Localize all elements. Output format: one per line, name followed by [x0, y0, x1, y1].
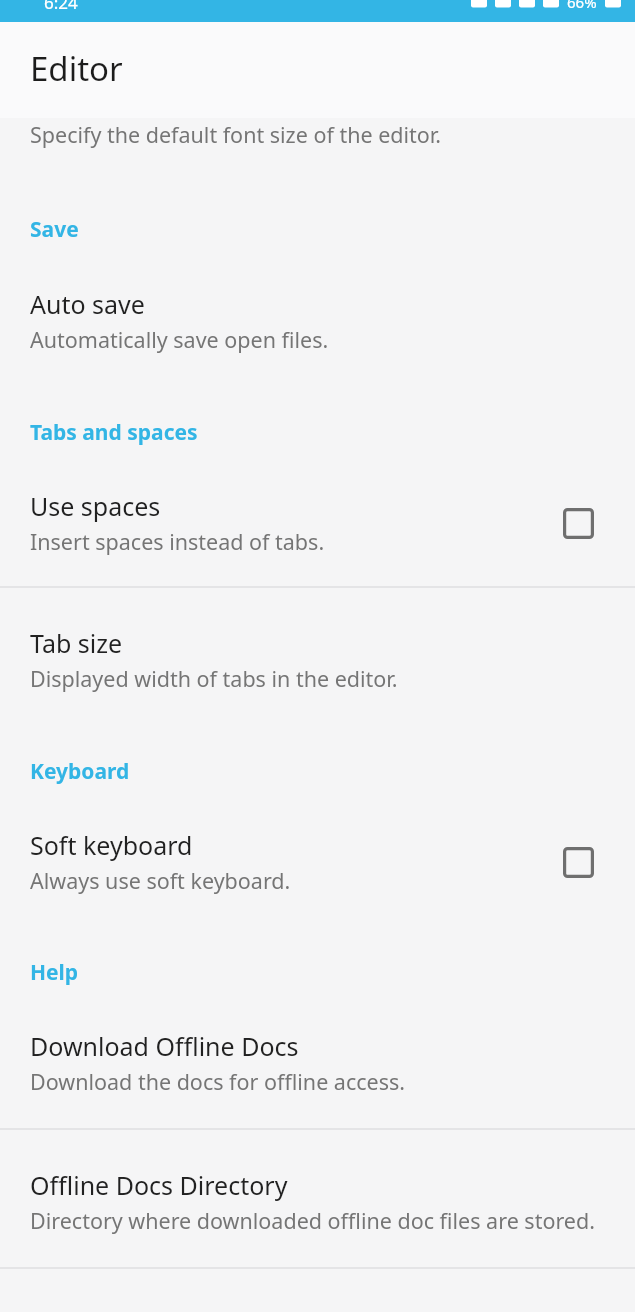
staticText: Displayed width of tabs in the editor. — [30, 664, 398, 693]
staticText: Editor — [30, 46, 123, 91]
button[interactable]: Auto save — [0, 244, 635, 354]
staticText: Directory where downloaded offline doc f… — [30, 1206, 595, 1235]
staticText: 6:24 — [44, 0, 78, 13]
button[interactable]: Tab size — [0, 588, 635, 693]
staticText: Auto save — [30, 287, 145, 321]
staticText: Offline Docs Directory — [30, 1168, 288, 1202]
button[interactable]: Soft keyboard — [549, 833, 607, 891]
button[interactable]: Use spaces — [549, 494, 607, 552]
staticText: 66% — [567, 0, 597, 12]
staticText: Soft keyboard — [30, 828, 193, 862]
staticText: Use spaces — [30, 489, 161, 523]
button[interactable]: Soft keyboard — [0, 786, 635, 895]
staticText: Automatically save open files. — [30, 325, 329, 354]
staticText: Insert spaces instead of tabs. — [30, 527, 325, 556]
staticText: Always use soft keyboard. — [30, 866, 291, 895]
button[interactable]: Use spaces — [0, 447, 635, 586]
staticText: Help — [30, 958, 79, 987]
button[interactable]: Download Offline Docs — [0, 987, 635, 1128]
staticText: Specify the default font size of the edi… — [30, 120, 442, 149]
button[interactable]: Editor font size — [0, 118, 635, 149]
staticText: Tabs and spaces — [30, 418, 198, 447]
staticText: Save — [30, 215, 79, 244]
button[interactable]: Offline Docs Directory — [0, 1130, 635, 1267]
staticText: Download Offline Docs — [30, 1029, 299, 1063]
staticText: Tab size — [30, 626, 123, 660]
staticText: Keyboard — [30, 757, 130, 786]
staticText: Download the docs for offline access. — [30, 1067, 406, 1096]
